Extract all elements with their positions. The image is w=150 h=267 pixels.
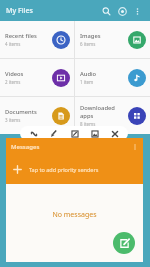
staticText: Recent files xyxy=(5,32,37,40)
staticText: 8 items xyxy=(80,121,96,127)
button[interactable]: Switch xyxy=(27,127,40,140)
staticText: 1 item xyxy=(80,79,94,85)
button[interactable]: Videos xyxy=(0,59,74,96)
staticText: No messages xyxy=(52,210,97,220)
button[interactable]: Downloaded apps xyxy=(75,97,150,134)
button[interactable]: Audio xyxy=(75,59,150,96)
button[interactable]: Close xyxy=(108,127,121,140)
staticText: Videos xyxy=(5,70,24,78)
staticText: Downloaded apps xyxy=(80,104,115,120)
button[interactable]: Tap to add priority senders xyxy=(6,156,143,182)
button[interactable]: More options xyxy=(129,141,141,153)
staticText: Documents xyxy=(5,108,37,116)
staticText: 4 items xyxy=(5,41,21,47)
button[interactable]: Storage analysis xyxy=(114,3,130,19)
staticText: Messages xyxy=(11,143,40,151)
button[interactable]: Paint xyxy=(47,127,60,140)
button[interactable]: Edit xyxy=(68,127,81,140)
button[interactable]: More options xyxy=(130,4,144,18)
button[interactable]: Documents xyxy=(0,97,74,134)
staticText: Audio xyxy=(80,70,97,78)
button[interactable]: Image xyxy=(88,127,101,140)
button[interactable]: Recent files xyxy=(0,21,74,58)
staticText: Tap to add priority senders xyxy=(29,166,99,173)
button[interactable]: Compose message xyxy=(113,232,135,254)
staticText: 2 items xyxy=(5,79,21,85)
button[interactable]: Search xyxy=(98,3,114,19)
staticText: My Files xyxy=(6,6,33,16)
button[interactable]: Images xyxy=(75,21,150,58)
staticText: Images xyxy=(80,32,101,40)
staticText: 3 items xyxy=(5,117,21,123)
staticText: 6 items xyxy=(80,41,96,47)
